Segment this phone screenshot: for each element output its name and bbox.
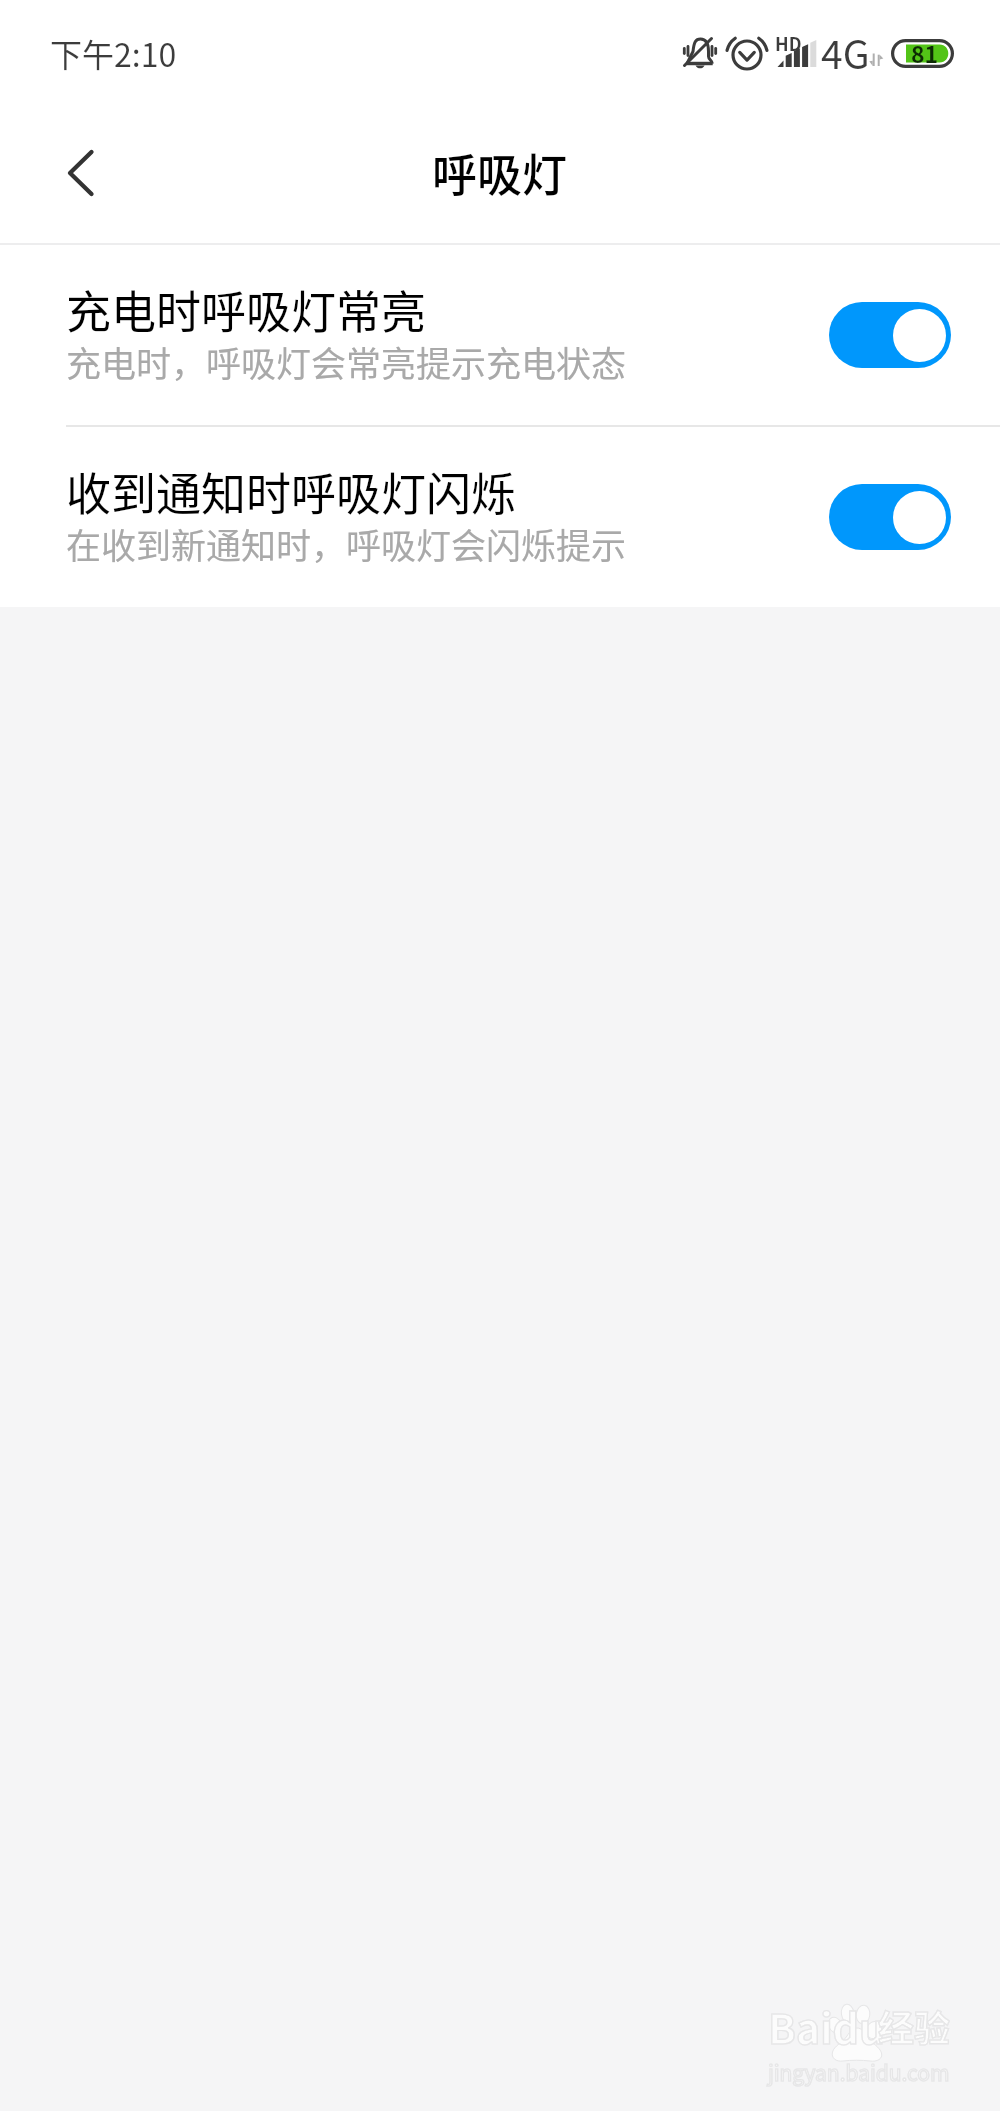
button[interactable]: 收到通知时呼吸灯闪烁 [0,427,1000,607]
staticText: jingyan.baidu.com [768,2057,950,2087]
staticText: 呼吸灯 [432,140,568,205]
staticText: 81 [911,36,939,69]
staticText: 经验 [878,2000,951,2052]
button[interactable]: 充电时呼吸灯常亮 [0,245,1000,425]
staticText: 充电时呼吸灯常亮 [66,277,427,342]
staticText: 下午2:10 [50,30,177,76]
staticText: Baidu [768,1996,886,2055]
button[interactable]: Back [20,135,120,235]
staticText: 在收到新通知时，呼吸灯会闪烁提示 [66,518,627,569]
staticText: 收到通知时呼吸灯闪烁 [66,459,517,524]
staticText: jingyan.baidu.com [768,2057,950,2087]
staticText: HD [775,30,802,56]
button[interactable]: Toggle switch, on [829,484,951,550]
staticText: 充电时，呼吸灯会常亮提示充电状态 [66,336,627,387]
staticText: 4G [821,24,870,80]
button[interactable]: Toggle switch, on [829,302,951,368]
staticText: 经验 [878,2000,951,2052]
staticText: Baidu [768,1996,886,2055]
